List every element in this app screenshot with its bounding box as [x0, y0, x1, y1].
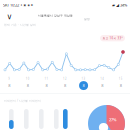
staticText: 미세먼지 / 시간별 미세먼지 — [4, 99, 41, 102]
button[interactable]: 12 — [56, 77, 74, 90]
staticText: 8 — [45, 83, 47, 88]
staticText: 12 — [63, 77, 67, 80]
staticText: 서울특별시 강남구 역삼동 — [38, 14, 73, 17]
staticText: 9 — [8, 77, 10, 80]
staticText: SKT 10:22 — [3, 2, 19, 8]
staticText: ◉ — [28, 3, 30, 6]
staticText: 27% — [109, 117, 117, 122]
button[interactable]: 10 — [19, 77, 37, 90]
staticText: 13 — [82, 77, 86, 80]
staticText: 현재 기온 · 시간별 날씨 — [4, 23, 36, 26]
staticText: 8 — [64, 83, 66, 88]
staticText: ✦ — [20, 3, 22, 6]
button[interactable]: 13 — [74, 77, 93, 90]
button[interactable]: 9 — [0, 77, 19, 90]
staticText: ▰ ◢ 34% — [112, 2, 127, 8]
staticText: ✤ — [31, 3, 33, 6]
staticText: 8 — [120, 83, 122, 88]
button[interactable]: 설정 — [84, 14, 96, 24]
staticText: 8 — [27, 83, 29, 88]
staticText: 최고 10시 33° — [102, 36, 122, 40]
staticText: 8 — [8, 83, 10, 88]
staticText: 설정 — [84, 17, 90, 21]
staticText: ▣ — [23, 3, 26, 6]
button[interactable]: 11 — [37, 77, 56, 90]
staticText: 11 — [44, 77, 48, 80]
staticText: 8 — [83, 83, 85, 88]
staticText: 14 — [100, 77, 104, 80]
staticText: 15 — [119, 77, 123, 80]
button[interactable]: 14 — [93, 77, 111, 90]
button[interactable]: Collapse — [3, 11, 16, 22]
staticText: 8 — [101, 83, 103, 88]
staticText: 10 — [26, 77, 30, 80]
button[interactable]: 15 — [111, 77, 130, 90]
staticText: ∨ — [6, 12, 12, 21]
